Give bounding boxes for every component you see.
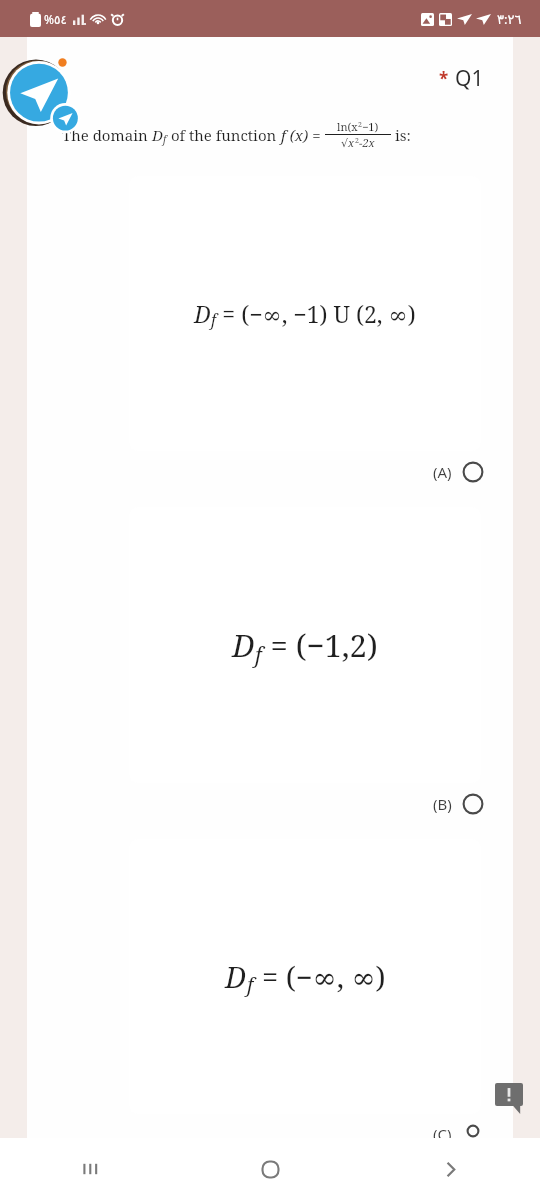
- staticText: D: [152, 125, 163, 145]
- staticText: D: [232, 624, 255, 666]
- staticText: *: [439, 67, 449, 90]
- staticText: (C): [433, 1124, 452, 1138]
- staticText: √x: [341, 135, 355, 150]
- staticText: D: [194, 298, 211, 329]
- staticText: %٥٤: [44, 11, 67, 27]
- staticText: = (−1,2): [262, 624, 378, 666]
- staticText: −1): [362, 119, 379, 134]
- button[interactable]: Option C: [462, 1124, 484, 1138]
- staticText: ln(x: [337, 119, 358, 134]
- staticText: 2: [355, 136, 359, 146]
- staticText: is:: [395, 125, 411, 145]
- button[interactable]: Home: [180, 1138, 360, 1200]
- button[interactable]: D: [129, 176, 481, 451]
- button[interactable]: D: [129, 839, 481, 1114]
- staticText: of the function: [167, 125, 281, 145]
- button[interactable]: Warning: [495, 1083, 523, 1114]
- staticText: f: [163, 132, 167, 146]
- staticText: = (−∞, −1) U (2, ∞): [216, 298, 416, 329]
- staticText: D: [225, 957, 247, 996]
- button[interactable]: Back: [360, 1138, 540, 1200]
- staticText: The domain: [62, 125, 152, 145]
- staticText: = (−∞, ∞): [254, 957, 386, 996]
- staticText: −2x: [359, 135, 375, 150]
- button[interactable]: Recent apps: [0, 1138, 180, 1200]
- staticText: (A): [433, 462, 452, 482]
- staticText: f (x) =: [281, 125, 321, 145]
- staticText: (B): [433, 794, 452, 814]
- button[interactable]: D: [129, 507, 481, 783]
- staticText: f: [255, 640, 262, 669]
- staticText: f: [211, 309, 216, 330]
- staticText: 2: [358, 120, 362, 130]
- button[interactable]: Option A: [462, 461, 484, 483]
- button[interactable]: Telegram floating bubble: [2, 49, 86, 133]
- button[interactable]: Option B: [462, 793, 484, 815]
- staticText: ٣:٢٦: [497, 10, 522, 28]
- staticText: Q1: [455, 64, 484, 93]
- staticText: f: [247, 971, 254, 998]
